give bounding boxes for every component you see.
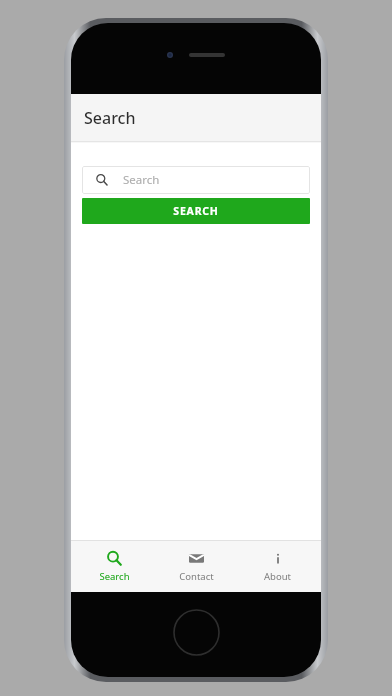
button[interactable]: Search (82, 166, 310, 194)
other: Search (107, 551, 122, 566)
staticText: SEARCH (173, 204, 219, 218)
button[interactable]: SEARCH (82, 198, 310, 224)
staticText: Contact (179, 570, 214, 583)
other: Search (96, 174, 108, 186)
other: About (271, 552, 285, 566)
staticText: About (264, 570, 291, 583)
button[interactable]: Search (77, 541, 152, 592)
staticText: Search (123, 172, 160, 188)
button[interactable]: Contact (159, 541, 234, 592)
other: Contact (189, 551, 204, 566)
staticText: Search (99, 570, 130, 583)
staticText: Search (84, 107, 136, 129)
button[interactable]: About (240, 541, 315, 592)
